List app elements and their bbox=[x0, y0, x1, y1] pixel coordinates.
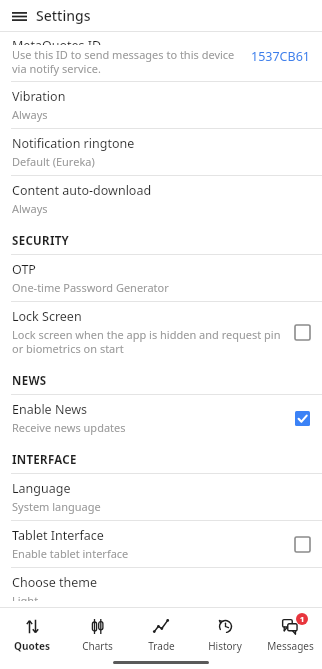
staticText: Receive news updates bbox=[12, 420, 126, 435]
button[interactable]: 1 bbox=[258, 608, 322, 655]
staticText: Lock Screen bbox=[12, 308, 82, 325]
staticText: Trade bbox=[148, 639, 175, 653]
button[interactable]: Toggle bbox=[295, 537, 310, 552]
staticText: Vibration bbox=[12, 88, 66, 105]
staticText: Always bbox=[12, 201, 48, 216]
button[interactable]: MetaQuotes ID bbox=[0, 32, 322, 81]
staticText: 1 bbox=[300, 614, 305, 624]
staticText: Lock screen when the app is hidden and r… bbox=[12, 327, 287, 356]
staticText: SECURITY bbox=[12, 233, 70, 249]
button[interactable]: Open navigation menu bbox=[8, 5, 30, 27]
button[interactable]: Lock Screen bbox=[0, 302, 322, 362]
staticText: Notification ringtone bbox=[12, 135, 135, 152]
button[interactable]: Quotes bbox=[0, 608, 64, 655]
staticText: INTERFACE bbox=[12, 452, 77, 468]
staticText: Settings bbox=[36, 6, 91, 25]
button[interactable]: Trade bbox=[129, 608, 193, 655]
staticText: Tablet Interface bbox=[12, 527, 104, 544]
staticText: Choose theme bbox=[12, 574, 98, 591]
staticText: System language bbox=[12, 499, 101, 514]
staticText: Enable tablet interface bbox=[12, 546, 129, 561]
button[interactable]: Choose theme bbox=[0, 568, 322, 607]
staticText: Content auto-download bbox=[12, 182, 152, 199]
button[interactable]: Toggle bbox=[295, 411, 310, 426]
staticText: Always bbox=[12, 107, 48, 122]
staticText: Quotes bbox=[14, 639, 50, 653]
staticText: Language bbox=[12, 480, 71, 497]
button[interactable]: Enable News bbox=[0, 395, 322, 441]
staticText: MetaQuotes ID bbox=[12, 37, 102, 45]
staticText: Light bbox=[12, 593, 39, 601]
button[interactable]: Content auto-download bbox=[0, 176, 322, 222]
staticText: History bbox=[208, 639, 242, 653]
staticText: Charts bbox=[82, 639, 113, 653]
button[interactable]: Tablet Interface bbox=[0, 521, 322, 567]
button[interactable]: History bbox=[193, 608, 257, 655]
button[interactable]: Charts bbox=[65, 608, 129, 655]
staticText: One-time Password Generator bbox=[12, 280, 169, 295]
staticText: Messages bbox=[267, 639, 314, 653]
staticText: NEWS bbox=[12, 373, 47, 389]
staticText: OTP bbox=[12, 261, 36, 278]
staticText: 1537CB61 bbox=[251, 48, 310, 65]
button[interactable]: OTP bbox=[0, 255, 322, 301]
button[interactable]: Toggle bbox=[295, 325, 310, 340]
staticText: Enable News bbox=[12, 401, 88, 418]
button[interactable]: Notification ringtone bbox=[0, 129, 322, 175]
button[interactable]: Vibration bbox=[0, 82, 322, 128]
staticText: Default (Eureka) bbox=[12, 154, 95, 169]
staticText: Use this ID to send messages to this dev… bbox=[12, 47, 243, 76]
button[interactable]: Language bbox=[0, 474, 322, 520]
